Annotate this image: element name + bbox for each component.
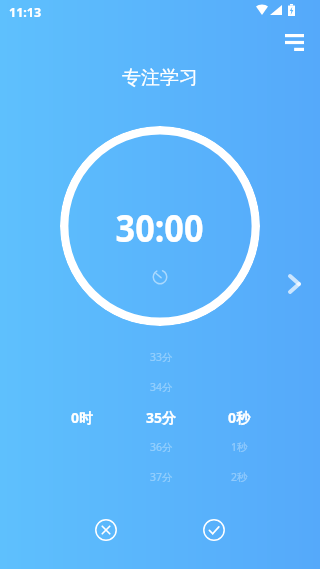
staticText: 33分 <box>150 350 173 364</box>
button[interactable]: 2秒 <box>205 462 273 492</box>
button[interactable]: Next <box>277 267 311 301</box>
staticText: 1秒 <box>231 440 248 454</box>
button[interactable]: 34分 <box>127 372 195 402</box>
staticText: 11:13 <box>9 4 42 21</box>
button[interactable]: 35分 <box>127 402 195 432</box>
button[interactable]: 36分 <box>127 432 195 462</box>
button[interactable]: Cancel <box>85 509 127 551</box>
button[interactable]: Menu <box>278 26 310 58</box>
staticText: 34分 <box>150 380 173 394</box>
staticText: 36分 <box>150 440 173 454</box>
button[interactable]: 1秒 <box>205 432 273 462</box>
staticText: 37分 <box>150 470 173 484</box>
button[interactable]: 0秒 <box>205 402 273 432</box>
staticText: 2秒 <box>231 470 248 484</box>
button[interactable]: 0时 <box>48 402 116 432</box>
staticText: 专注学习 <box>0 66 320 90</box>
button[interactable]: Confirm <box>193 509 235 551</box>
staticText: 0时 <box>71 408 94 427</box>
staticText: 0秒 <box>228 408 251 427</box>
button[interactable]: Start timer 30:00 <box>60 126 260 326</box>
button[interactable]: 37分 <box>127 462 195 492</box>
staticText: 30:00 <box>116 202 204 252</box>
button[interactable]: 33分 <box>127 342 195 372</box>
staticText: 35分 <box>146 408 177 427</box>
